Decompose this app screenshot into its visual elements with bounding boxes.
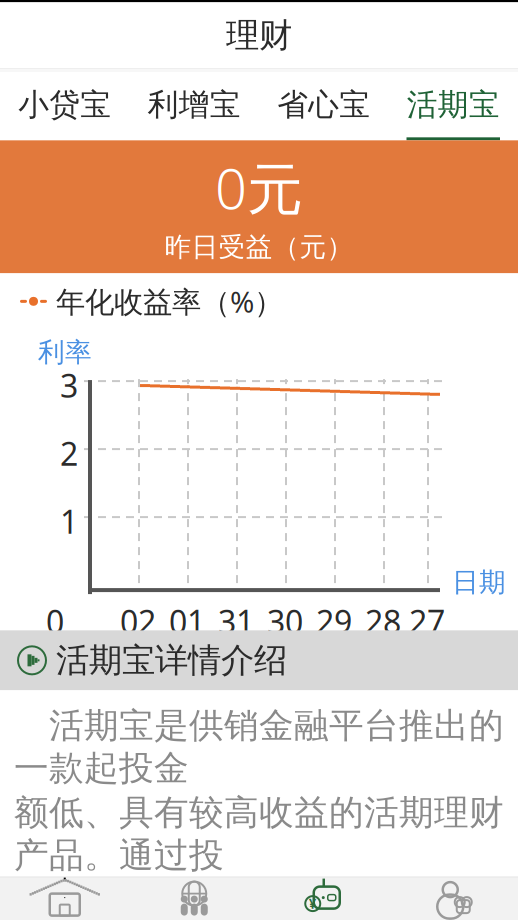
staticText: 省心宝 [277,86,370,124]
staticText: 活期宝 [407,86,500,124]
staticText: 29 [316,600,352,643]
button[interactable]: ¥ [259,878,388,920]
staticText: 01 [169,600,205,643]
staticText: 02 [120,600,156,643]
staticText: 27 [409,600,445,643]
staticText: 30 [267,600,303,643]
button[interactable]: 省心宝 [259,72,388,140]
staticText: 31 [218,600,254,643]
staticText: ¥ [309,895,317,912]
staticText: 日期 [452,566,506,599]
button[interactable]: 我的 [388,878,518,920]
staticText: 额低、具有较高收益的活期理财产品。通过投 [14,791,504,877]
staticText: 3 [60,364,78,407]
staticText: 1 [60,500,78,543]
staticText: 0元 [215,150,303,225]
staticText: 利率 [38,336,92,369]
staticText: 28 [365,600,401,643]
button[interactable]: 利增宝 [129,72,259,140]
button[interactable]: 首页 [0,878,129,920]
staticText: 年化收益率（%） [47,282,283,321]
staticText: 利增宝 [148,86,241,124]
staticText: 理财 [226,15,292,56]
button[interactable]: 众筹 [129,878,259,920]
staticText: 昨日受益（元） [164,231,353,263]
staticText: 2 [60,432,78,475]
staticText: 小贷宝 [18,86,111,124]
staticText: 活期宝是供销金融平台推出的一款起投金 [14,704,504,789]
button[interactable]: 小贷宝 [0,72,129,140]
staticText: 0 [46,600,64,643]
staticText: 活期宝详情介绍 [56,640,287,681]
button[interactable]: 活期宝 [388,72,518,140]
button[interactable]: 活期宝详情介绍 [0,630,518,690]
